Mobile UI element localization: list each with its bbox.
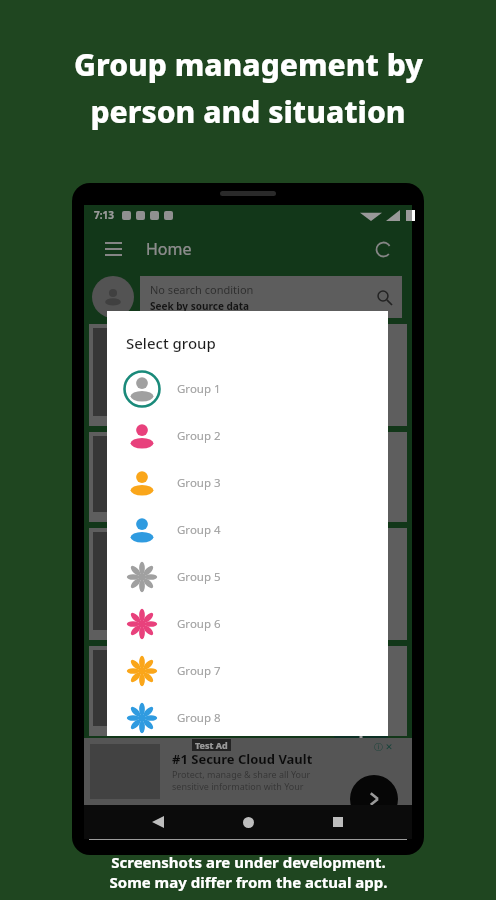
button[interactable]: Next: [350, 775, 398, 823]
button[interactable]: Group 3: [107, 459, 388, 506]
button[interactable]: Group 5: [107, 553, 388, 600]
button[interactable]: Home: [232, 806, 264, 838]
button[interactable]: Sep 10, 2019 6:13 PM: [89, 324, 407, 426]
staticText: Sep 10, 2019 6:13 PM: [189, 786, 301, 801]
staticText: Group 6: [177, 616, 221, 632]
staticText: 7:13: [94, 208, 114, 222]
staticText: ⓘ ✕: [374, 740, 393, 752]
staticText: Group 4: [177, 522, 221, 538]
staticText: Screenshots are under development.: [111, 852, 386, 872]
button[interactable]: Back: [142, 806, 174, 838]
staticText: Some may differ from the actual app.: [109, 872, 388, 892]
button[interactable]: Group 1: [107, 365, 388, 412]
staticText: Group 5: [177, 569, 221, 585]
staticText: Sep 10, 2019 6:13 PM: [189, 472, 301, 487]
button[interactable]: Sep 10, 2019 6:13 PM: [89, 646, 407, 736]
staticText: Seek by source data: [150, 299, 250, 313]
staticText: person and situation: [90, 91, 406, 132]
staticText: Group 3: [177, 475, 221, 491]
button[interactable]: Sep 10, 2019 6:13 PM: [89, 432, 407, 522]
button[interactable]: Group 4: [107, 506, 388, 553]
button[interactable]: Sep 10, 2019 6:13 PM: [89, 742, 407, 840]
staticText: Protect, manage & share all Your sensiti…: [172, 768, 311, 792]
button[interactable]: Menu: [98, 234, 128, 264]
button[interactable]: Refresh: [368, 234, 398, 264]
button[interactable]: Account: [92, 276, 134, 318]
button[interactable]: Sep 10, 2019 6:13 PM: [89, 528, 407, 640]
staticText: Select group: [126, 333, 216, 353]
staticText: No search condition: [150, 282, 254, 297]
button[interactable]: Recents: [322, 806, 354, 838]
button[interactable]: Add: [334, 707, 388, 761]
staticText: Group 8: [177, 710, 221, 726]
staticText: Sep 10, 2019 6:13 PM: [189, 579, 301, 594]
staticText: Home: [146, 238, 192, 260]
button[interactable]: Group 7: [107, 647, 388, 694]
staticText: Test Ad: [195, 739, 228, 751]
staticText: Group 7: [177, 663, 221, 679]
button[interactable]: Group 6: [107, 600, 388, 647]
staticText: Group management by: [74, 44, 423, 85]
button[interactable]: No search condition: [140, 276, 402, 318]
button[interactable]: Group 2: [107, 412, 388, 459]
staticText: Group 2: [177, 428, 221, 444]
button[interactable]: Group 8: [107, 694, 388, 741]
staticText: Group 1: [177, 381, 221, 397]
staticText: #1 Secure Cloud Vault: [172, 750, 313, 768]
